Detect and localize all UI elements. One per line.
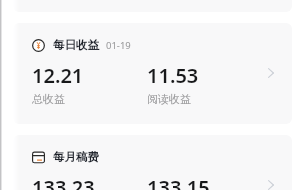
staticText: 133.15: [147, 174, 210, 190]
staticText: 阅读收益: [147, 92, 191, 106]
staticText: 11.53: [147, 62, 199, 89]
staticText: 01-19: [106, 39, 131, 52]
staticText: 每月稿费: [53, 150, 99, 164]
other: More: [268, 68, 274, 78]
staticText: 12.21: [32, 62, 84, 89]
button[interactable]: 每日收益: [13, 23, 292, 124]
button[interactable]: 每月稿费: [13, 135, 292, 190]
other: More: [268, 180, 274, 190]
staticText: 总收益: [32, 92, 65, 106]
staticText: 每日收益: [53, 38, 99, 52]
staticText: 133.23: [32, 174, 95, 190]
